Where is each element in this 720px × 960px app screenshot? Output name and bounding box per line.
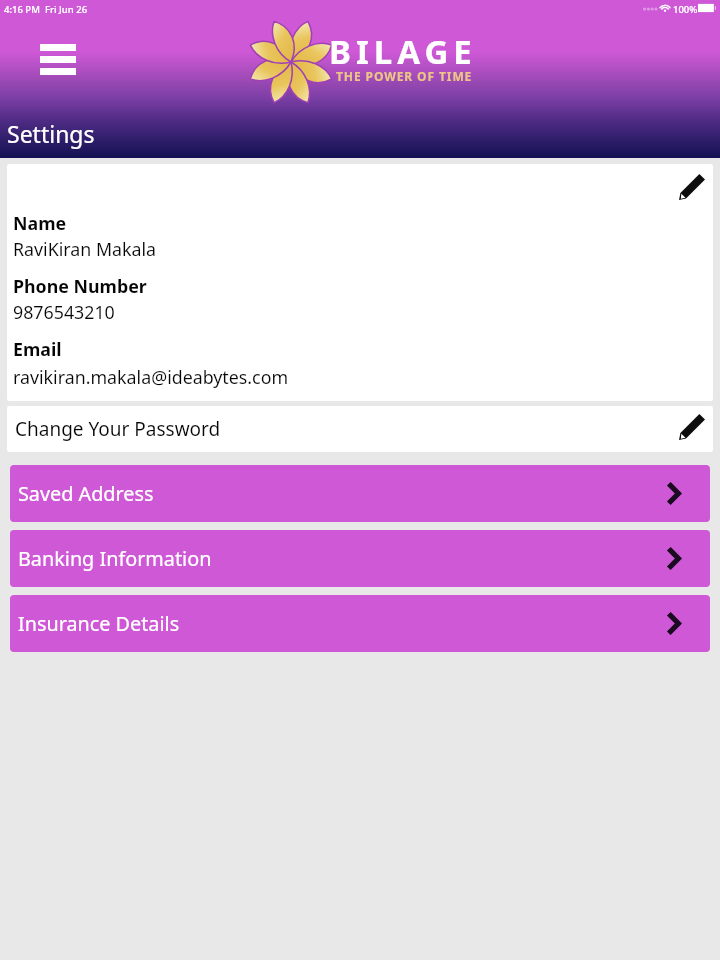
button[interactable]: Change Your Password — [7, 406, 713, 452]
staticText: Banking Information — [18, 545, 212, 572]
staticText: Saved Address — [18, 480, 154, 507]
staticText: Email — [13, 337, 62, 361]
staticText: THE POWER OF TIME — [336, 68, 473, 84]
staticText: Fri Jun 26 — [45, 3, 88, 16]
staticText: ravikiran.makala@ideabytes.com — [13, 365, 289, 389]
staticText: Change Your Password — [15, 416, 221, 442]
staticText: 4:16 PM — [4, 3, 40, 16]
staticText: Insurance Details — [18, 610, 180, 637]
button[interactable]: Saved Address — [10, 465, 710, 522]
button[interactable]: Edit profile — [670, 164, 713, 210]
staticText: BILAGE — [329, 29, 477, 74]
staticText: Name — [13, 211, 67, 235]
button[interactable]: Banking Information — [10, 530, 710, 587]
button[interactable]: Insurance Details — [10, 595, 710, 652]
staticText: Phone Number — [13, 274, 147, 298]
staticText: 100% — [673, 3, 698, 16]
staticText: 9876543210 — [13, 300, 115, 324]
button[interactable]: Open navigation menu — [28, 33, 88, 85]
staticText: Settings — [7, 118, 95, 149]
staticText: RaviKiran Makala — [13, 237, 157, 261]
